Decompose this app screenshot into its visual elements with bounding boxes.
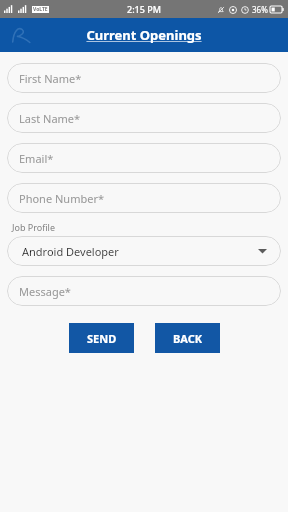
staticText: 36%	[252, 4, 268, 15]
staticText: Current Openings	[86, 26, 202, 44]
button[interactable]: Phone Number*	[7, 183, 281, 213]
staticText: BACK	[173, 331, 203, 346]
staticText: Message*	[19, 284, 71, 299]
staticText: VoLTE	[33, 6, 48, 13]
staticText: Email*	[19, 151, 54, 166]
staticText: 2:15 PM	[127, 3, 161, 15]
staticText: SEND	[87, 331, 117, 346]
button[interactable]: Email*	[7, 143, 281, 173]
staticText: Phone Number*	[19, 191, 104, 206]
button[interactable]: BACK	[155, 323, 220, 353]
staticText: Job Profile	[12, 221, 56, 233]
button[interactable]: Job Profile dropdown	[7, 236, 281, 266]
button[interactable]: First Name*	[7, 63, 281, 93]
button[interactable]: Message*	[7, 276, 281, 306]
button[interactable]: SEND	[69, 323, 134, 353]
button[interactable]: Last Name*	[7, 103, 281, 133]
staticText: First Name*	[19, 71, 82, 86]
staticText: Last Name*	[19, 111, 81, 126]
staticText: Android Developer	[22, 244, 119, 259]
